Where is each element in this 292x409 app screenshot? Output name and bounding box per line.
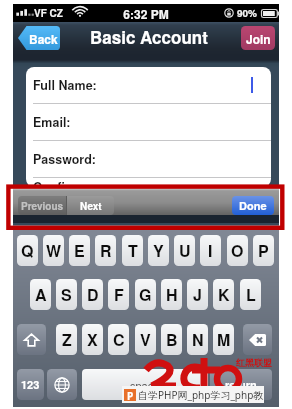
button[interactable]: Full Name: xyxy=(26,67,271,103)
staticText: R xyxy=(100,239,112,262)
button[interactable]: Delete xyxy=(243,324,272,355)
staticText: 红黑联盟 xyxy=(236,357,272,368)
staticText: Password: xyxy=(33,150,97,168)
button[interactable]: Z xyxy=(56,324,77,355)
button[interactable]: I xyxy=(200,235,221,266)
staticText: M xyxy=(217,328,231,351)
staticText: 90% xyxy=(237,6,258,20)
button[interactable]: E xyxy=(69,235,90,266)
button[interactable]: R xyxy=(95,235,116,266)
button[interactable]: Y xyxy=(148,235,169,266)
button[interactable]: Previous xyxy=(18,196,66,215)
staticText: X xyxy=(87,328,98,351)
staticText: H xyxy=(166,283,178,306)
button[interactable]: G xyxy=(135,279,156,310)
staticText: return xyxy=(225,377,257,393)
staticText: O xyxy=(231,239,244,262)
button[interactable]: Password: xyxy=(26,141,271,177)
button[interactable]: C xyxy=(108,324,129,355)
button[interactable]: V xyxy=(135,324,156,355)
staticText: J xyxy=(193,283,202,306)
staticText: Join xyxy=(246,30,271,47)
button[interactable]: U xyxy=(174,235,195,266)
button[interactable]: H xyxy=(161,279,182,310)
staticText: 自学PHP网_php学习_php教 xyxy=(138,388,264,402)
staticText: P xyxy=(127,389,134,401)
button[interactable]: M xyxy=(213,324,234,355)
staticText: N xyxy=(192,328,204,351)
button[interactable]: Q xyxy=(17,235,38,266)
button[interactable]: Join xyxy=(241,26,275,50)
button[interactable]: Change keyboard xyxy=(47,369,77,400)
staticText: W xyxy=(46,239,62,262)
staticText: VF CZ xyxy=(34,6,63,20)
staticText: Confirm: xyxy=(33,178,86,187)
staticText: Email: xyxy=(33,113,71,131)
button[interactable]: L xyxy=(240,279,261,310)
staticText: C xyxy=(113,328,125,351)
staticText: Done xyxy=(239,198,267,214)
staticText: B xyxy=(166,328,178,351)
button[interactable]: 123 xyxy=(17,369,44,400)
button[interactable]: Confirm: xyxy=(26,178,271,187)
button[interactable]: A xyxy=(30,279,51,310)
staticText: 123 xyxy=(21,377,40,393)
staticText: L xyxy=(246,283,256,306)
button[interactable]: K xyxy=(213,279,234,310)
staticText: Previous xyxy=(21,199,64,213)
staticText: E xyxy=(74,239,85,262)
button[interactable]: T xyxy=(122,235,143,266)
button[interactable]: Next xyxy=(67,196,114,215)
button[interactable]: Shift xyxy=(17,324,46,355)
button[interactable]: F xyxy=(108,279,129,310)
staticText: 6:32 PM xyxy=(13,5,279,22)
button[interactable]: Email: xyxy=(26,104,271,140)
staticText: Back xyxy=(29,30,58,47)
button[interactable]: Done xyxy=(232,196,274,215)
staticText: D xyxy=(87,283,99,306)
button[interactable]: space xyxy=(82,369,208,400)
staticText: F xyxy=(114,283,124,306)
button[interactable]: W xyxy=(43,235,64,266)
staticText: Z xyxy=(62,328,72,351)
button[interactable]: X xyxy=(82,324,103,355)
staticText: P xyxy=(258,239,269,262)
staticText: S xyxy=(61,283,72,306)
button[interactable]: B xyxy=(161,324,182,355)
button[interactable]: O xyxy=(227,235,248,266)
button[interactable]: N xyxy=(187,324,208,355)
button[interactable]: D xyxy=(82,279,103,310)
staticText: K xyxy=(218,283,230,306)
staticText: T xyxy=(128,239,138,262)
staticText: U xyxy=(179,239,191,262)
staticText: space xyxy=(130,377,160,393)
staticText: Q xyxy=(21,239,34,262)
staticText: I xyxy=(208,239,213,262)
staticText: A xyxy=(35,283,47,306)
button[interactable]: P xyxy=(253,235,274,266)
staticText: Full Name: xyxy=(33,76,97,94)
button[interactable]: Back xyxy=(18,26,60,50)
staticText: Next xyxy=(80,199,102,213)
button[interactable]: S xyxy=(56,279,77,310)
staticText: Y xyxy=(153,239,164,262)
button[interactable]: return xyxy=(210,369,272,400)
staticText: G xyxy=(139,283,152,306)
staticText: Basic Account xyxy=(90,25,208,49)
button[interactable]: J xyxy=(187,279,208,310)
staticText: V xyxy=(140,328,151,351)
